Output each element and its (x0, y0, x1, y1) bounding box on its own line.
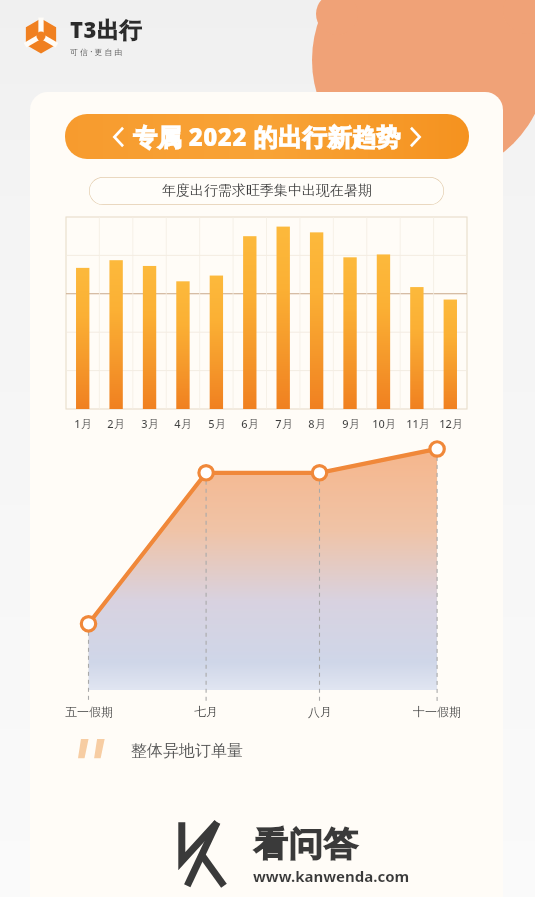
staticText: 11月 (406, 416, 430, 431)
button[interactable]: 年度出行需求旺季集中出现在暑期 (89, 177, 444, 205)
staticText: 5月 (208, 416, 226, 431)
staticText: 可 信 · 更 自 由 (70, 46, 123, 57)
staticText: 五一假期 (65, 704, 113, 719)
staticText: 八月 (308, 704, 332, 719)
staticText: 9月 (342, 416, 360, 431)
staticText: T3出行 (70, 14, 142, 44)
button[interactable]: 专属 2022 的出行新趋势 (65, 114, 469, 159)
staticText: 七月 (194, 704, 218, 719)
staticText: 看问答 (253, 823, 358, 866)
button[interactable]: T3出行 (20, 12, 144, 59)
staticText: 6月 (241, 416, 259, 431)
staticText: 整体异地订单量 (131, 741, 243, 761)
staticText: 专属 2022 的出行新趋势 (133, 120, 401, 153)
staticText: 3月 (141, 416, 159, 431)
staticText: 1月 (74, 416, 92, 431)
staticText: 4月 (174, 416, 192, 431)
staticText: 12月 (439, 416, 463, 431)
staticText: 8月 (308, 416, 326, 431)
button[interactable]: 整体异地订单量 (78, 739, 503, 763)
staticText: 2月 (107, 416, 125, 431)
staticText: 十一假期 (413, 704, 461, 719)
staticText: 年度出行需求旺季集中出现在暑期 (162, 182, 372, 200)
staticText: 7月 (275, 416, 293, 431)
staticText: 10月 (372, 416, 396, 431)
staticText: www.kanwenda.com (253, 866, 410, 886)
